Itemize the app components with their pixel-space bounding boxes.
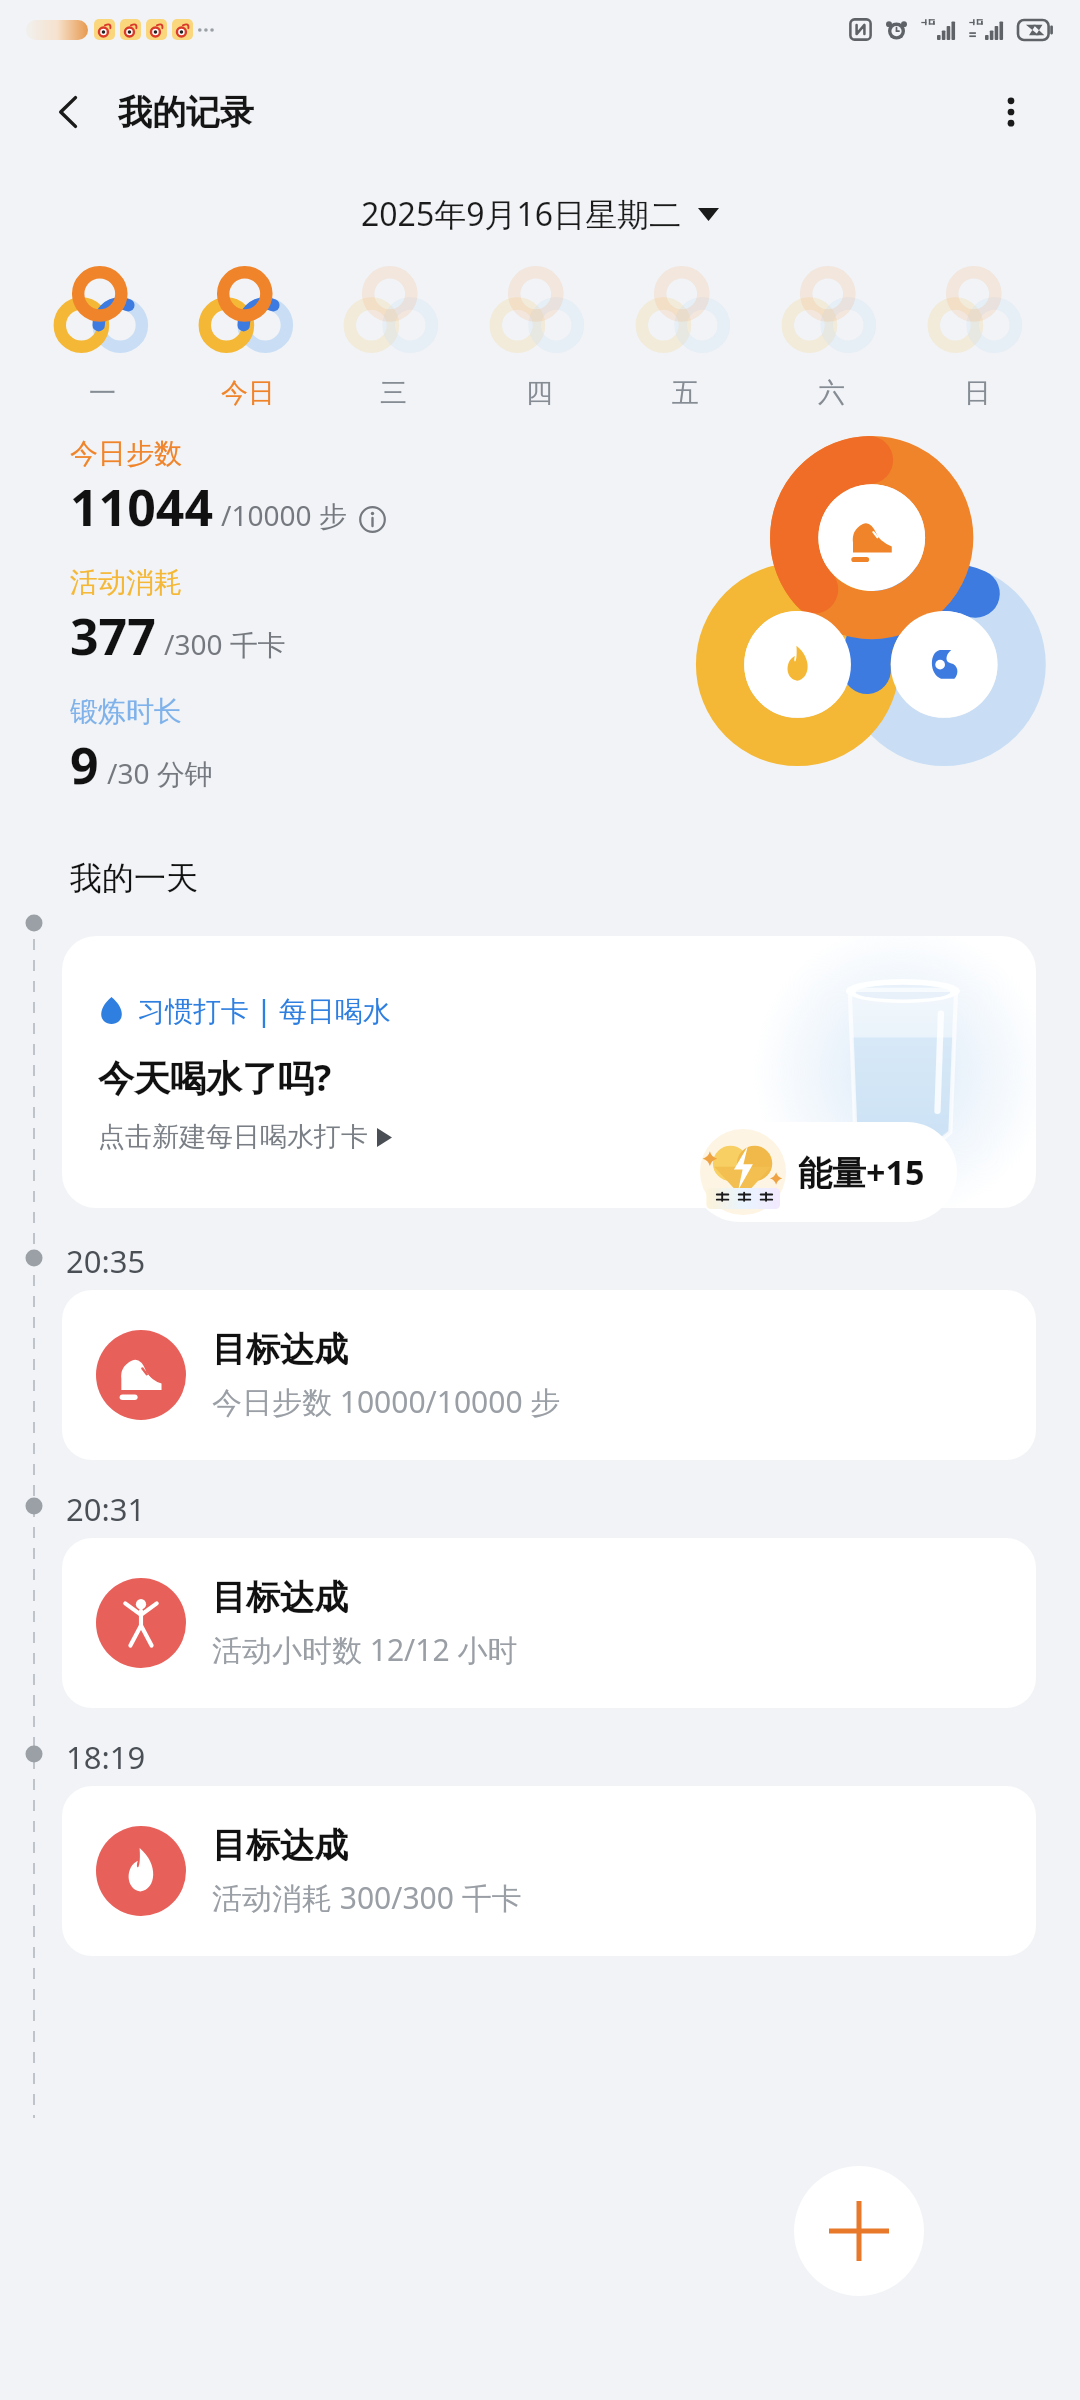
staticText: 活动消耗: [70, 565, 182, 600]
staticText: 五: [672, 376, 699, 410]
button[interactable]: 三: [320, 262, 466, 410]
button[interactable]: 今日: [175, 262, 320, 410]
staticText: 日: [964, 376, 991, 410]
staticText: 20:35: [66, 1240, 146, 1282]
staticText: /300 千卡: [164, 625, 286, 663]
button[interactable]: 日: [904, 262, 1050, 410]
staticText: 能量+15: [798, 1149, 925, 1195]
staticText: /30 分钟: [107, 754, 213, 792]
staticText: 我的一天: [70, 858, 198, 898]
staticText: 20:31: [66, 1488, 146, 1530]
staticText: 11044: [70, 473, 213, 541]
button[interactable]: Back: [40, 83, 98, 141]
staticText: 目标达成: [212, 1328, 348, 1371]
staticText: 18:19: [66, 1736, 146, 1778]
button[interactable]: 目标达成: [62, 1290, 1036, 1460]
staticText: 今日: [221, 376, 275, 410]
staticText: 三: [380, 376, 407, 410]
staticText: 目标达成: [212, 1824, 348, 1867]
staticText: 今日步数 10000/10000 步: [212, 1381, 561, 1422]
staticText: 一: [89, 376, 116, 410]
staticText: 点击新建每日喝水打卡: [98, 1120, 368, 1154]
staticText: 我的记录: [118, 91, 254, 134]
button[interactable]: Collect energy +15: [690, 1122, 957, 1222]
button[interactable]: 六: [758, 262, 904, 410]
button[interactable]: 五: [612, 262, 758, 410]
staticText: 今天喝水了吗?: [98, 1053, 332, 1102]
staticText: /10000 步: [221, 496, 347, 534]
staticText: 今日步数: [70, 436, 182, 471]
staticText: 习惯打卡 | 每日喝水: [137, 991, 391, 1029]
button[interactable]: 2025年9月16日星期二: [343, 182, 737, 246]
staticText: 2025年9月16日星期二: [361, 192, 682, 236]
button[interactable]: 目标达成: [62, 1786, 1036, 1956]
staticText: 活动小时数 12/12 小时: [212, 1629, 518, 1670]
staticText: 六: [818, 376, 845, 410]
staticText: 活动消耗 300/300 千卡: [212, 1877, 522, 1918]
button[interactable]: 目标达成: [62, 1538, 1036, 1708]
button[interactable]: 四: [466, 262, 612, 410]
staticText: 9: [70, 731, 99, 799]
staticText: 目标达成: [212, 1576, 348, 1619]
staticText: 377: [70, 602, 156, 670]
staticText: 锻炼时长: [70, 694, 182, 729]
button[interactable]: More options: [980, 81, 1042, 143]
button[interactable]: Add record: [794, 2166, 924, 2296]
staticText: 四: [526, 376, 553, 410]
button[interactable]: 一: [30, 262, 175, 410]
button[interactable]: 习惯打卡 | 每日喝水: [62, 936, 1036, 1208]
